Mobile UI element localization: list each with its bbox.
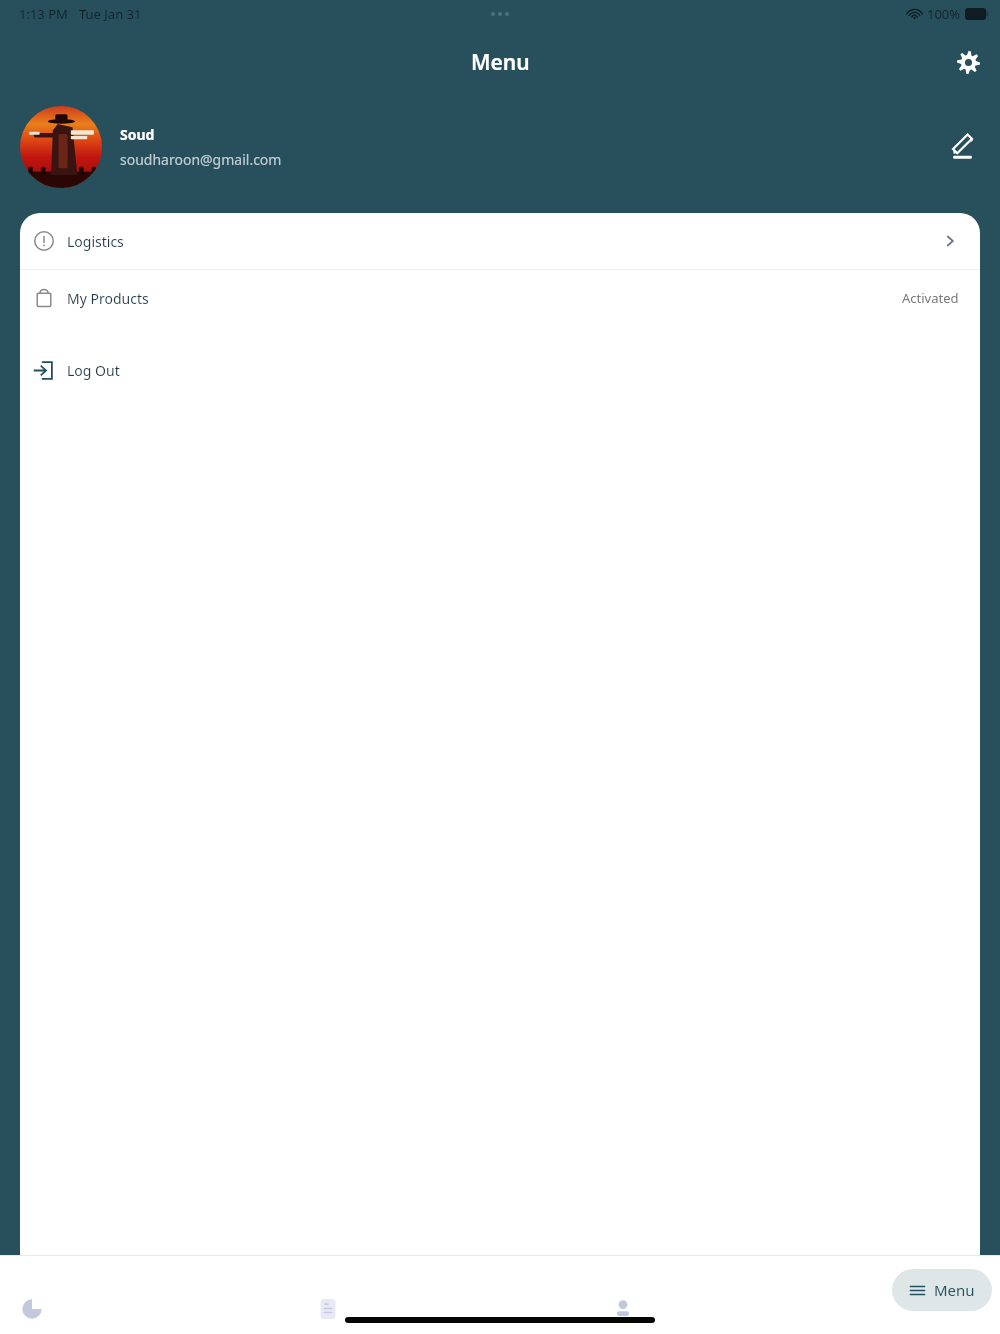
button[interactable]: Orders (300, 1281, 356, 1334)
button[interactable]: Log Out (20, 344, 980, 396)
button[interactable]: Dashboard (4, 1281, 60, 1334)
button[interactable]: Edit profile (940, 123, 988, 171)
staticText: 100% (927, 5, 961, 23)
staticText: My Products (67, 289, 149, 308)
staticText: Menu (471, 48, 530, 77)
button[interactable]: Logistics (20, 213, 980, 269)
button[interactable]: Profile (595, 1281, 651, 1334)
button[interactable] (20, 106, 102, 188)
staticText: Log Out (67, 361, 120, 380)
button[interactable]: Settings (944, 38, 992, 86)
button[interactable]: Menu (892, 1269, 992, 1311)
staticText: Logistics (67, 232, 124, 251)
staticText: soudharoon@gmail.com (120, 150, 282, 169)
staticText: Activated (902, 289, 959, 307)
staticText: Menu (934, 1280, 975, 1300)
staticText: Tue Jan 31 (79, 5, 142, 23)
staticText: 1:13 PM (19, 5, 68, 23)
button[interactable]: My Products (20, 270, 980, 326)
staticText: Soud (120, 125, 155, 144)
button[interactable]: Soud (0, 97, 1000, 197)
